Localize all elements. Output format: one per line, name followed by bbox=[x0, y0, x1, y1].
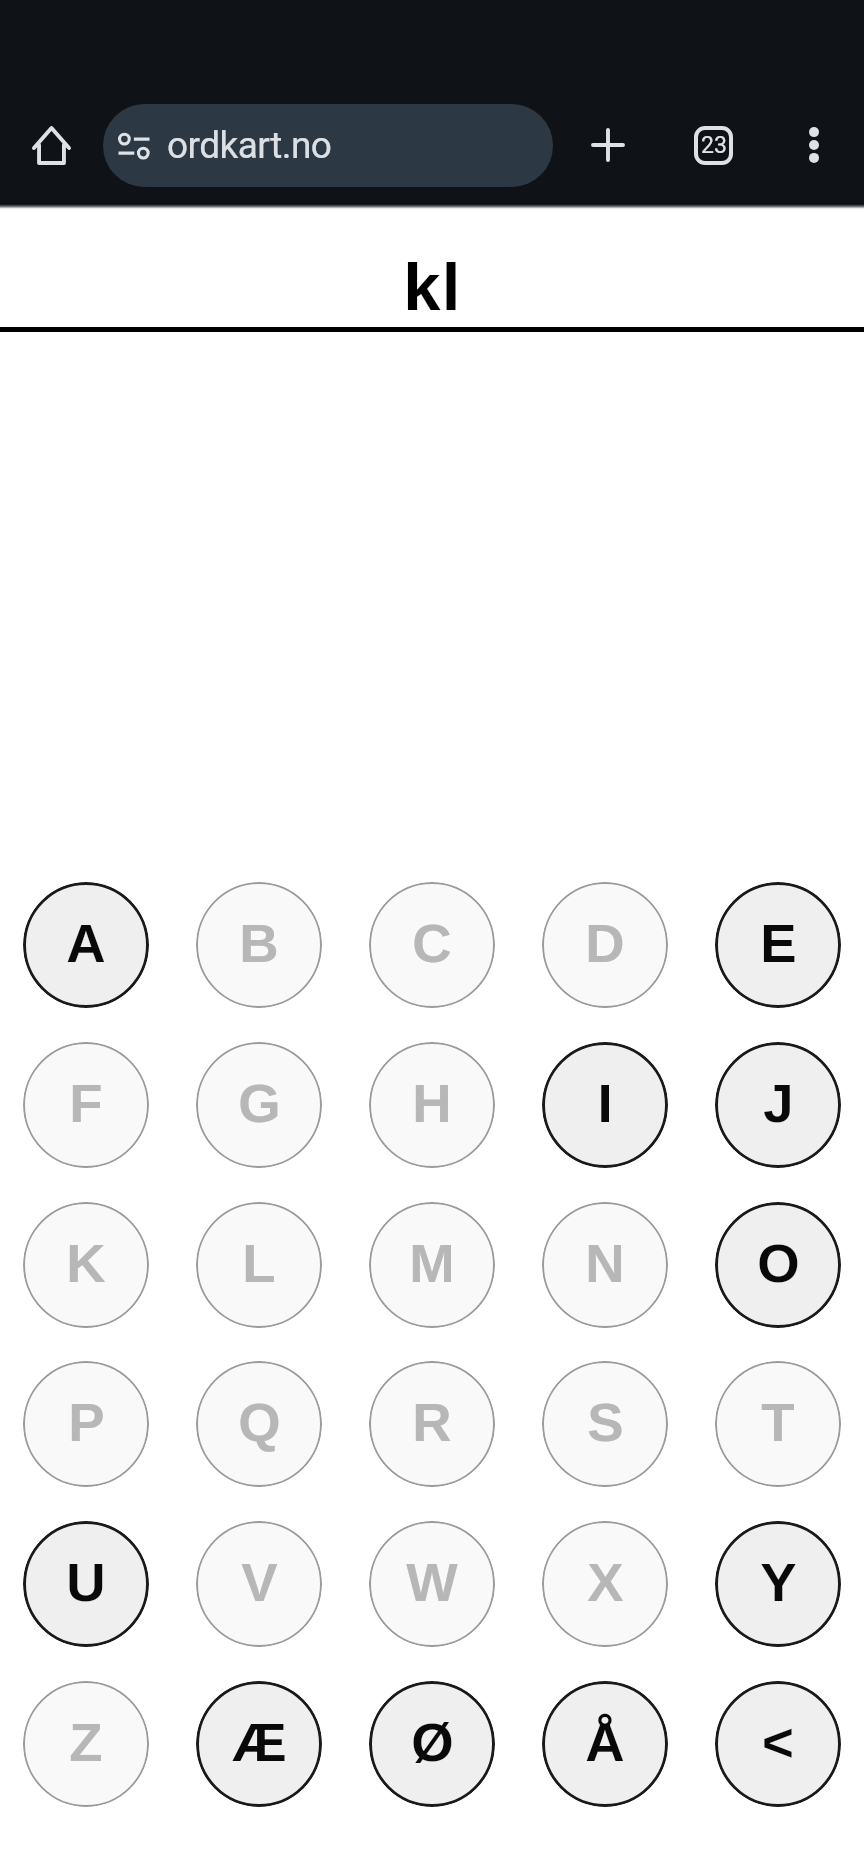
staticText: S bbox=[587, 1392, 624, 1453]
staticText: W bbox=[406, 1552, 458, 1613]
button[interactable]: U bbox=[23, 1521, 149, 1647]
button[interactable]: E bbox=[715, 882, 841, 1008]
button[interactable]: I bbox=[542, 1042, 668, 1168]
button[interactable]: J bbox=[715, 1042, 841, 1168]
button[interactable]: B bbox=[196, 882, 322, 1008]
button[interactable]: W bbox=[369, 1521, 495, 1647]
staticText: C bbox=[412, 913, 452, 974]
staticText: Å bbox=[585, 1712, 625, 1773]
button[interactable]: Å bbox=[542, 1681, 668, 1807]
staticText: Ø bbox=[411, 1712, 454, 1773]
staticText: I bbox=[597, 1073, 613, 1134]
staticText: Z bbox=[69, 1712, 103, 1773]
button[interactable]: Ø bbox=[369, 1681, 495, 1807]
staticText: kl bbox=[403, 249, 462, 324]
staticText: H bbox=[412, 1073, 452, 1134]
button[interactable]: M bbox=[369, 1202, 495, 1328]
staticText: J bbox=[763, 1073, 794, 1134]
button[interactable]: More options bbox=[782, 113, 846, 177]
button[interactable]: G bbox=[196, 1042, 322, 1168]
staticText: F bbox=[69, 1073, 103, 1134]
staticText: V bbox=[241, 1552, 278, 1613]
staticText: T bbox=[761, 1392, 795, 1453]
staticText: N bbox=[585, 1233, 625, 1294]
button[interactable]: ordkart.no bbox=[103, 104, 553, 187]
button[interactable]: Æ bbox=[196, 1681, 322, 1807]
button[interactable]: A bbox=[23, 882, 149, 1008]
staticText: Y bbox=[760, 1552, 797, 1613]
staticText: K bbox=[66, 1233, 106, 1294]
staticText: < bbox=[762, 1712, 794, 1773]
staticText: U bbox=[66, 1552, 106, 1613]
staticText: L bbox=[242, 1233, 276, 1294]
staticText: G bbox=[238, 1073, 281, 1134]
button[interactable]: O bbox=[715, 1202, 841, 1328]
button[interactable]: Switch tabs, 23 open bbox=[681, 113, 745, 177]
staticText: Æ bbox=[232, 1712, 287, 1773]
button[interactable]: F bbox=[23, 1042, 149, 1168]
button[interactable]: N bbox=[542, 1202, 668, 1328]
button[interactable]: D bbox=[542, 882, 668, 1008]
button[interactable]: V bbox=[196, 1521, 322, 1647]
staticText: R bbox=[412, 1392, 452, 1453]
staticText: E bbox=[760, 913, 797, 974]
staticText: Q bbox=[238, 1392, 281, 1453]
button[interactable]: < bbox=[715, 1681, 841, 1807]
button[interactable]: New tab bbox=[576, 113, 640, 177]
button[interactable]: R bbox=[369, 1361, 495, 1487]
button[interactable]: T bbox=[715, 1361, 841, 1487]
button[interactable]: Z bbox=[23, 1681, 149, 1807]
staticText: A bbox=[66, 913, 106, 974]
button[interactable]: X bbox=[542, 1521, 668, 1647]
staticText: ordkart.no bbox=[167, 124, 332, 167]
staticText: B bbox=[239, 913, 279, 974]
staticText: 23 bbox=[701, 132, 727, 159]
button[interactable]: K bbox=[23, 1202, 149, 1328]
staticText: O bbox=[757, 1233, 800, 1294]
button[interactable]: S bbox=[542, 1361, 668, 1487]
staticText: M bbox=[409, 1233, 455, 1294]
button[interactable]: P bbox=[23, 1361, 149, 1487]
button[interactable]: Y bbox=[715, 1521, 841, 1647]
staticText: D bbox=[585, 913, 625, 974]
button[interactable]: Home bbox=[19, 113, 83, 177]
button[interactable]: H bbox=[369, 1042, 495, 1168]
staticText: X bbox=[587, 1552, 624, 1613]
staticText: P bbox=[68, 1392, 105, 1453]
button[interactable]: C bbox=[369, 882, 495, 1008]
button[interactable]: L bbox=[196, 1202, 322, 1328]
button[interactable]: Q bbox=[196, 1361, 322, 1487]
